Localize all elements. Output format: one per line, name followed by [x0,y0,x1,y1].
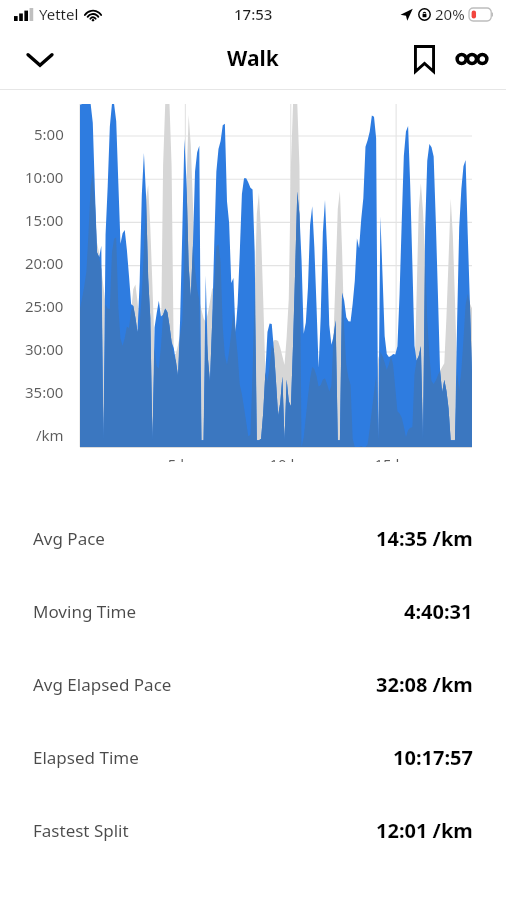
staticText: Fastest Split [33,819,129,842]
staticText: Avg Pace [33,527,105,550]
staticText: 20% [435,4,465,24]
button[interactable]: Fastest Split [0,794,506,867]
staticText: Yettel [39,4,79,24]
staticText: 5 km [149,454,221,462]
button[interactable]: Elapsed Time [0,721,506,794]
staticText: Moving Time [33,600,137,623]
staticText: Walk [227,44,279,73]
staticText: 5:00 [34,124,64,144]
staticText: 10:00 [25,167,64,187]
button[interactable]: More options [448,35,496,83]
staticText: 10 km [255,454,327,462]
button[interactable]: Bookmark [400,35,448,83]
staticText: 4:40:31 [404,598,473,625]
staticText: 35:00 [25,382,64,402]
staticText: Avg Elapsed Pace [33,673,172,696]
button[interactable]: Moving Time [0,575,506,648]
staticText: 10:17:57 [393,744,473,771]
staticText: 32:08 /km [376,671,473,698]
staticText: 20:00 [25,253,64,273]
staticText: /km [36,425,64,445]
staticText: 14:35 /km [376,525,473,552]
staticText: 25:00 [25,296,64,316]
button[interactable]: Avg Pace [0,502,506,575]
staticText: 15 km [360,454,432,462]
staticText: 12:01 /km [376,817,473,844]
button[interactable]: Avg Elapsed Pace [0,648,506,721]
staticText: 30:00 [25,339,64,359]
button[interactable]: Collapse [16,35,64,83]
staticText: 17:53 [234,4,273,24]
staticText: Elapsed Time [33,746,139,769]
staticText: 15:00 [25,210,64,230]
